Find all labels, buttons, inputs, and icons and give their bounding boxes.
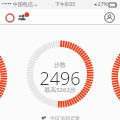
staticText: ••••• 中国电信 ᴗ [2, 1, 38, 8]
button[interactable]: Activity [3, 11, 16, 24]
staticText: 下午8:03 [55, 1, 75, 8]
staticText: 最高5262步 [44, 86, 76, 94]
staticText: ◂ 27% [94, 1, 108, 8]
button[interactable]: Friends [16, 11, 29, 24]
button[interactable]: 今日运动记录 [0, 115, 120, 120]
staticText: 步数 [54, 61, 66, 69]
staticText: 今日运动记录 [50, 115, 80, 120]
button[interactable]: Profile [103, 11, 116, 24]
staticText: 2496 [39, 66, 81, 91]
